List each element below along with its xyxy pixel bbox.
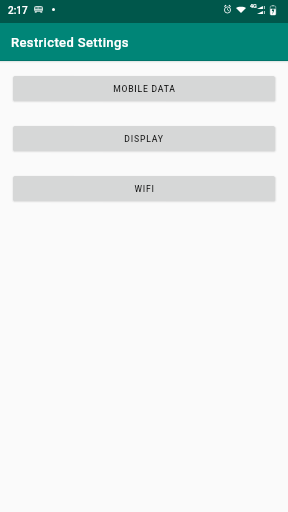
button[interactable]: MOBILE DATA <box>13 76 275 101</box>
staticText: DISPLAY <box>124 134 164 144</box>
button[interactable]: WIFI <box>13 176 275 201</box>
staticText: Restricted Settings <box>11 35 129 50</box>
staticText: 2:17 <box>8 5 28 17</box>
staticText: WIFI <box>134 184 155 194</box>
staticText: MOBILE DATA <box>113 84 176 94</box>
staticText: 4G <box>250 3 257 9</box>
button[interactable]: DISPLAY <box>13 126 275 151</box>
